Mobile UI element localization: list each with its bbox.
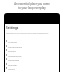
staticText: Account (8, 40, 18, 43)
staticText: Notifications (8, 45, 23, 48)
button[interactable]: About (6, 66, 58, 70)
button[interactable]: Account (6, 39, 58, 43)
button[interactable]: Notifications (6, 44, 58, 48)
button[interactable]: Privacy (6, 48, 58, 52)
staticText: Language (8, 58, 20, 61)
staticText: An essential place you come (14, 2, 50, 6)
staticText: Manage your account and app preferences (6, 32, 49, 35)
staticText: Settings (6, 26, 19, 30)
staticText: About (8, 67, 15, 70)
staticText: Privacy (8, 49, 16, 52)
staticText: to your loop everyday (18, 6, 46, 10)
button[interactable]: Appearance (6, 53, 58, 57)
button[interactable]: Language (6, 57, 58, 61)
staticText: Appearance (8, 54, 22, 57)
button[interactable]: Storage (6, 62, 58, 66)
staticText: Storage (8, 63, 17, 66)
